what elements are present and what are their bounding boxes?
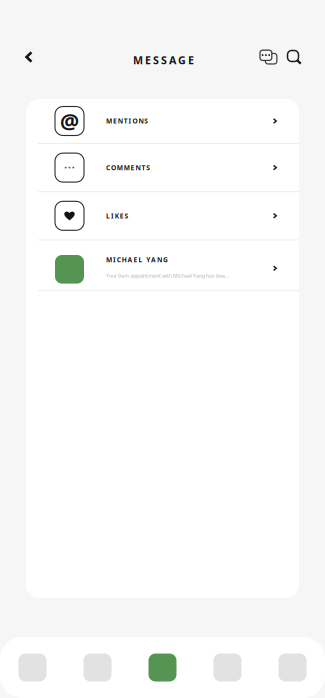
staticText: E: [131, 163, 135, 172]
staticText: E: [145, 53, 151, 67]
staticText: S: [161, 53, 167, 67]
staticText: Your 9am appointment with Michael Yang h…: [106, 272, 230, 279]
staticText: M: [106, 255, 112, 264]
button[interactable]: Tab 3: [130, 637, 195, 698]
staticText: C: [117, 255, 121, 264]
staticText: N: [118, 117, 123, 125]
button[interactable]: Tab 5: [260, 637, 325, 698]
staticText: M: [106, 117, 112, 125]
staticText: E: [188, 53, 194, 67]
button[interactable]: Search: [287, 43, 301, 71]
staticText: O: [132, 117, 137, 125]
staticText: T: [124, 117, 128, 125]
staticText: A: [128, 255, 133, 264]
staticText: I: [111, 211, 114, 220]
button[interactable]: Tab 2: [65, 637, 130, 698]
button[interactable]: M: [26, 240, 299, 290]
staticText: N: [135, 163, 140, 172]
staticText: E: [113, 117, 117, 125]
staticText: I: [113, 255, 116, 264]
staticText: O: [111, 163, 116, 172]
button[interactable]: Tab 1: [0, 637, 65, 698]
staticText: E: [120, 211, 124, 220]
staticText: A: [151, 255, 156, 264]
staticText: L: [106, 211, 110, 220]
staticText: E: [133, 255, 137, 264]
button[interactable]: Tab 4: [195, 637, 260, 698]
staticText: S: [144, 117, 148, 125]
button[interactable]: C: [26, 144, 299, 191]
staticText: S: [146, 163, 150, 172]
staticText: H: [122, 255, 127, 264]
staticText: L: [138, 255, 142, 264]
button[interactable]: Messages: [260, 43, 277, 71]
staticText: S: [153, 53, 159, 67]
staticText: G: [178, 53, 186, 67]
button[interactable]: L: [26, 192, 299, 239]
staticText: C: [106, 163, 110, 172]
staticText: T: [141, 163, 145, 172]
staticText: M: [117, 163, 123, 172]
staticText: @: [60, 107, 79, 135]
staticText: N: [157, 255, 162, 264]
button[interactable]: @: [26, 99, 299, 143]
staticText: Y: [146, 255, 150, 264]
staticText: S: [125, 211, 129, 220]
staticText: K: [115, 211, 119, 220]
staticText: N: [138, 117, 143, 125]
staticText: M: [133, 53, 143, 67]
staticText: M: [124, 163, 130, 172]
staticText: A: [169, 53, 176, 67]
staticText: I: [129, 117, 132, 125]
button[interactable]: Back: [15, 42, 43, 72]
staticText: G: [163, 255, 168, 264]
